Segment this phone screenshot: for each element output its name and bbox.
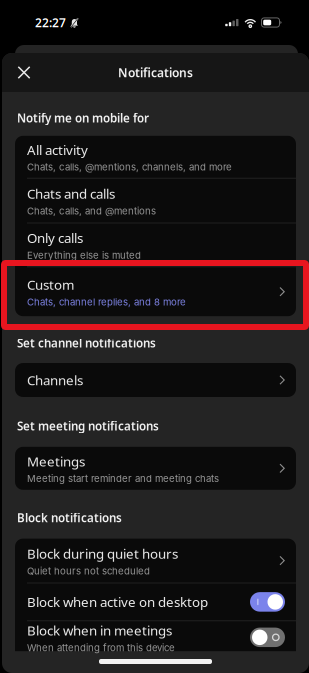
button[interactable]: Channels [15, 363, 296, 397]
staticText: Block when active on desktop [27, 593, 208, 611]
staticText: Chats, channel replies, and 8 more [27, 296, 186, 308]
staticText: Chats and calls [27, 184, 115, 203]
button[interactable]: Block when in meetings [15, 621, 296, 651]
staticText: Block during quiet hours [27, 544, 178, 563]
button[interactable]: Close [9, 57, 39, 87]
button[interactable]: Block during quiet hours [15, 539, 296, 583]
staticText: Channels [27, 371, 83, 389]
staticText: Notifications [118, 64, 193, 81]
staticText: Chats, calls, @mentions, channels, and m… [27, 161, 232, 173]
staticText: Set channel notifications [17, 335, 156, 351]
staticText: Custom [27, 276, 74, 294]
button[interactable]: Block when active on desktop [15, 583, 296, 620]
staticText: Chats, calls, and @mentions [27, 205, 156, 217]
button[interactable]: Custom [15, 267, 296, 316]
button[interactable]: Only calls [15, 223, 296, 266]
button[interactable]: Chats and calls [15, 179, 296, 223]
staticText: All activity [27, 141, 88, 159]
staticText: Notify me on mobile for [17, 110, 149, 126]
staticText: Set meeting notifications [17, 418, 159, 434]
staticText: 22:27 [35, 14, 66, 31]
staticText: Meetings [27, 452, 85, 470]
button[interactable]: All activity [15, 136, 296, 178]
button[interactable]: Meetings [15, 447, 296, 490]
staticText: When attending from this device [27, 642, 175, 653]
staticText: Block notifications [17, 510, 122, 526]
staticText: Only calls [27, 229, 83, 247]
staticText: Block when in meetings [27, 621, 172, 639]
staticText: Meeting start reminder and meeting chats [27, 473, 219, 484]
staticText: Quiet hours not scheduled [27, 565, 150, 577]
staticText: Everything else is muted [27, 249, 141, 261]
